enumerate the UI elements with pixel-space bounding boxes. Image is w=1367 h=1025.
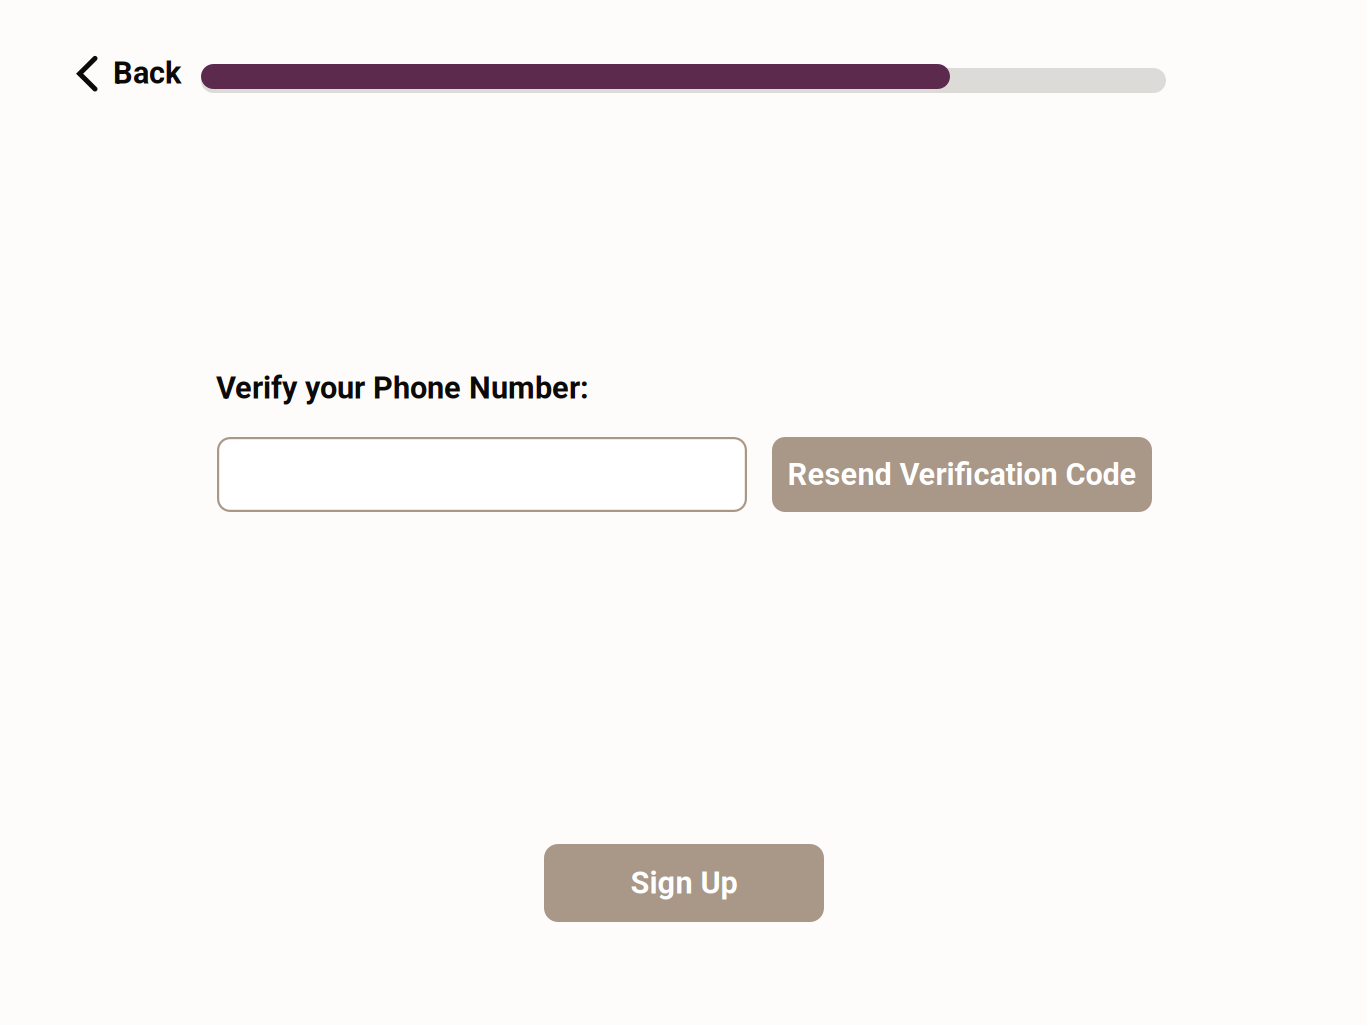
button[interactable]: Sign Up xyxy=(544,844,824,922)
staticText: Sign Up xyxy=(630,865,737,901)
staticText: Verify your Phone Number: xyxy=(216,370,589,406)
button[interactable]: Verification code xyxy=(217,437,747,512)
staticText: Back xyxy=(113,55,181,91)
button[interactable]: Resend Verification Code xyxy=(772,437,1152,512)
button[interactable]: Back xyxy=(74,50,194,94)
staticText: Resend Verification Code xyxy=(787,456,1136,492)
